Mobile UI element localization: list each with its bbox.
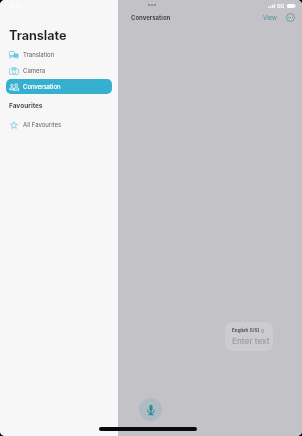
button[interactable]: Conversation (6, 79, 112, 94)
button[interactable]: View (262, 14, 278, 21)
staticText: Conversation (131, 14, 171, 21)
button[interactable]: English (US) (225, 322, 273, 351)
staticText: Enter text (232, 336, 270, 346)
button[interactable]: All Favourites (6, 117, 112, 132)
staticText: All Favourites (23, 121, 62, 128)
button[interactable]: Window controls (147, 3, 156, 7)
button[interactable]: Camera (6, 63, 112, 78)
staticText: Translate (9, 28, 67, 43)
staticText: Favourites (9, 102, 43, 110)
staticText: 5G (277, 3, 285, 9)
staticText: English (US) (232, 328, 260, 334)
button[interactable]: Microphone (139, 398, 162, 421)
staticText: Camera (23, 67, 46, 74)
staticText: View (263, 14, 277, 21)
button[interactable]: Translation (6, 47, 112, 62)
staticText: Translation (23, 51, 55, 58)
staticText: Conversation (23, 83, 61, 90)
button[interactable]: More options (286, 13, 295, 22)
